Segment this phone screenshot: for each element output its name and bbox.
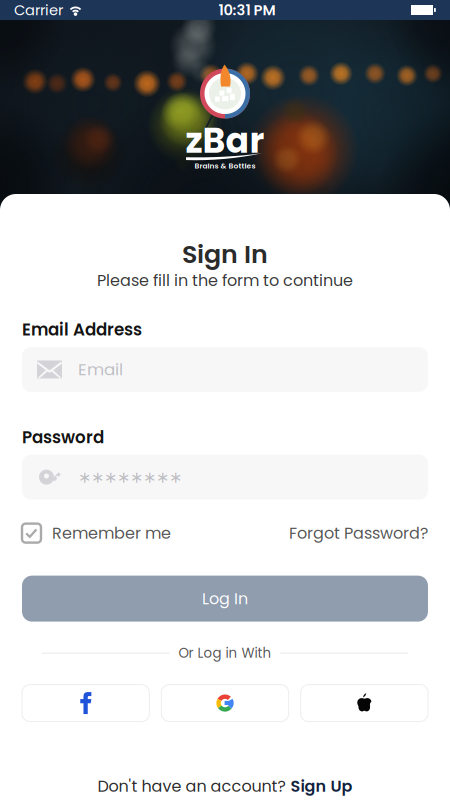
staticText: Don't have an account? bbox=[97, 777, 285, 795]
staticText: Or Log in With bbox=[178, 646, 271, 660]
staticText: Sign In bbox=[182, 240, 268, 268]
button[interactable]: Remember me bbox=[22, 524, 171, 543]
staticText: ∗∗∗∗∗∗∗∗ bbox=[78, 470, 182, 485]
button[interactable]: Forgot Password? bbox=[289, 524, 428, 542]
staticText: Log In bbox=[202, 590, 248, 608]
button[interactable]: Sign Up bbox=[290, 777, 352, 795]
staticText: zBar bbox=[185, 121, 264, 160]
staticText: Remember me bbox=[52, 524, 171, 542]
button[interactable]: Sign in with Apple bbox=[301, 685, 428, 722]
button[interactable]: Sign in with Google bbox=[161, 685, 289, 722]
button[interactable]: Sign in with Facebook bbox=[22, 685, 149, 722]
staticText: Please fill in the form to continue bbox=[97, 271, 353, 289]
staticText: Email bbox=[78, 360, 123, 379]
staticText: Brains & Bottles bbox=[194, 162, 255, 170]
staticText: Forgot Password? bbox=[289, 524, 428, 542]
staticText: Password bbox=[22, 428, 104, 447]
button[interactable]: Log In bbox=[22, 576, 428, 622]
staticText: Carrier bbox=[14, 2, 63, 18]
staticText: 10:31 PM bbox=[218, 2, 275, 18]
staticText: Sign Up bbox=[290, 777, 352, 795]
staticText: Email Address bbox=[22, 320, 142, 339]
